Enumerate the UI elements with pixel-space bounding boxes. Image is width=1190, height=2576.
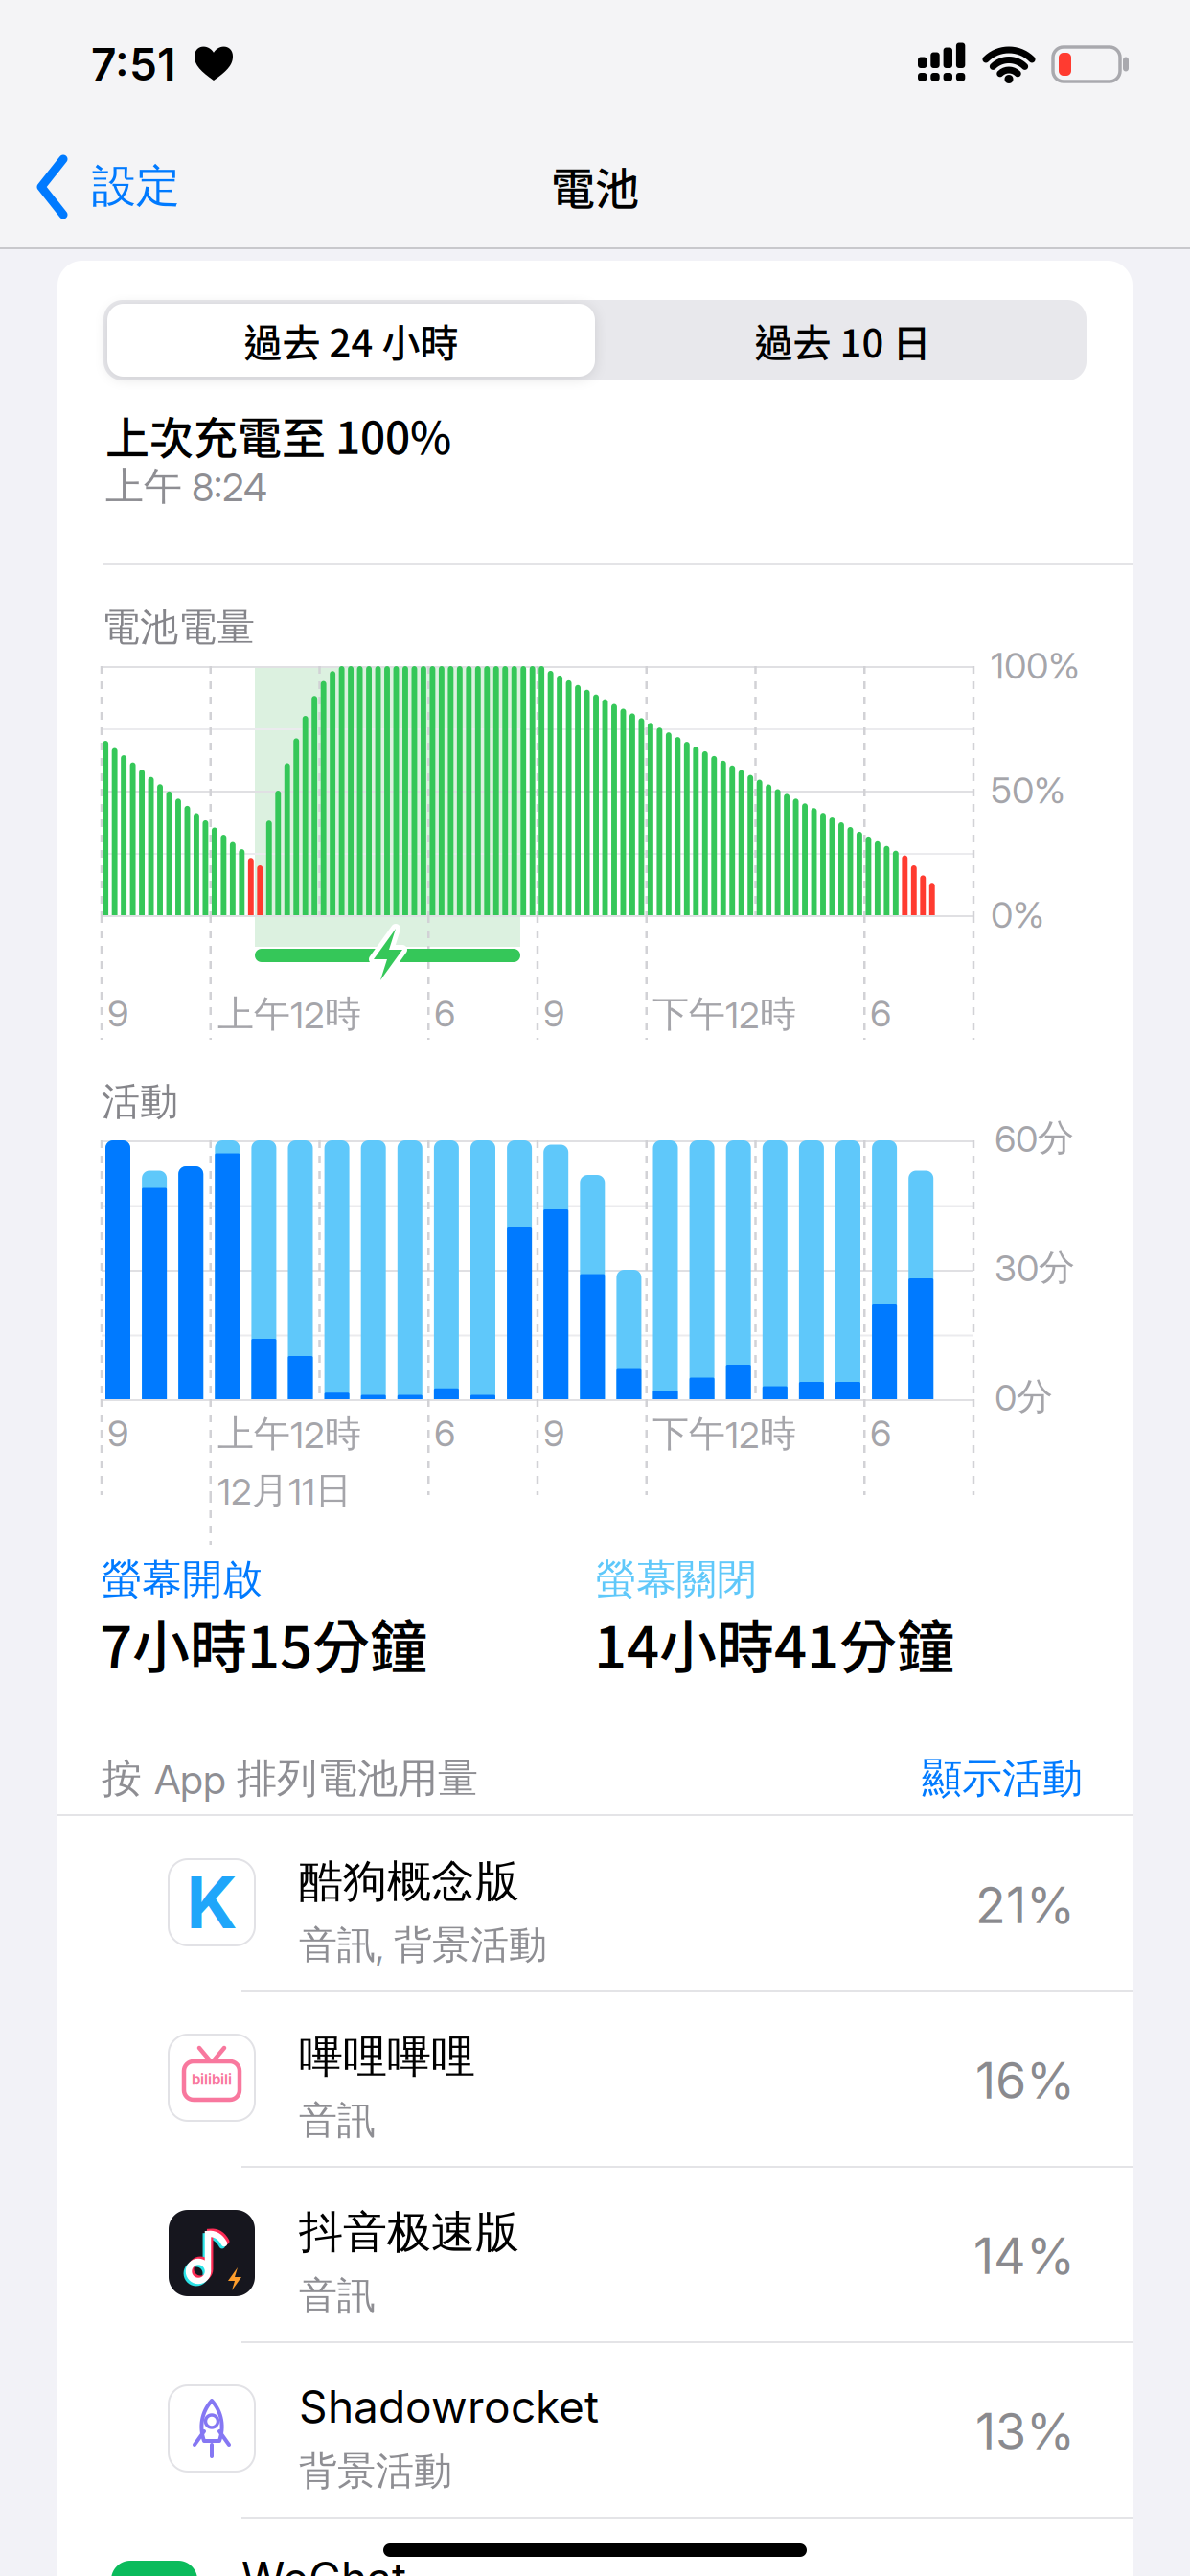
staticText: 過去 10 日 (755, 313, 931, 367)
staticText: 下午12時 (652, 1412, 796, 1457)
staticText: 16% (975, 2051, 1075, 2110)
staticText: 嗶哩嗶哩 (299, 2030, 475, 2084)
staticText: 60分 (995, 1115, 1074, 1160)
staticText: 上次充電至 100% (105, 403, 451, 466)
staticText: 12月11日 (217, 1468, 352, 1513)
staticText: 過去 24 小時 (244, 313, 458, 367)
staticText: 音訊, 背景活動 (299, 1921, 547, 1969)
staticText: K (186, 1860, 237, 1944)
staticText: bilibili (192, 2071, 232, 2088)
staticText: 6 (434, 1412, 455, 1455)
staticText: 下午12時 (652, 992, 796, 1037)
button[interactable]: 顯示活動 (922, 1754, 1083, 1803)
staticText: 酷狗概念版 (299, 1854, 519, 1909)
staticText: 0分 (995, 1374, 1053, 1419)
staticText: 14% (973, 2226, 1075, 2285)
staticText: 上午 8:24 (105, 463, 267, 510)
staticText: 0% (991, 893, 1044, 936)
button[interactable]: Shadowrocket (57, 2342, 1133, 2518)
staticText: 50% (991, 769, 1065, 812)
staticText: 設定 (92, 159, 180, 214)
staticText: 100% (991, 644, 1080, 687)
staticText: 螢幕開啟 (102, 1554, 263, 1604)
staticText: 上午12時 (217, 1412, 361, 1457)
staticText: 上午12時 (217, 992, 361, 1037)
button[interactable]: 返回設定 (0, 126, 240, 246)
staticText: 30分 (995, 1245, 1075, 1290)
staticText: 6 (870, 1412, 891, 1455)
staticText: 9 (543, 1412, 564, 1455)
staticText: 9 (543, 992, 564, 1035)
button[interactable]: 抖音极速版 (57, 2167, 1133, 2342)
staticText: 21% (975, 1875, 1075, 1935)
staticText: 背景活動 (299, 2448, 452, 2495)
button[interactable]: K (57, 1816, 1133, 1991)
staticText: 6 (434, 992, 455, 1035)
staticText: 活動 (102, 1078, 178, 1125)
staticText: 14小時41分鐘 (594, 1602, 954, 1684)
button[interactable]: 過去 10 日 (599, 300, 1087, 380)
staticText: 9 (107, 992, 128, 1035)
button[interactable]: bilibili (57, 1991, 1133, 2167)
staticText: 7:51 (91, 38, 175, 91)
staticText: 電池 (551, 154, 639, 217)
staticText: 電池電量 (102, 604, 255, 651)
staticText: 6 (870, 992, 891, 1035)
staticText: 音訊 (299, 2272, 376, 2320)
staticText: Shadowrocket (299, 2380, 599, 2433)
staticText: 抖音极速版 (299, 2205, 519, 2260)
staticText: 音訊 (299, 2097, 376, 2144)
staticText: 顯示活動 (922, 1754, 1083, 1803)
staticText: 9 (107, 1412, 128, 1455)
staticText: 按 App 排列電池用量 (102, 1754, 478, 1803)
staticText: 7小時15分鐘 (100, 1602, 427, 1684)
staticText: 螢幕關閉 (596, 1554, 757, 1604)
staticText: 13% (975, 2402, 1075, 2461)
staticText: WeChat (241, 2552, 406, 2576)
button[interactable]: 過去 24 小時 (103, 300, 599, 380)
